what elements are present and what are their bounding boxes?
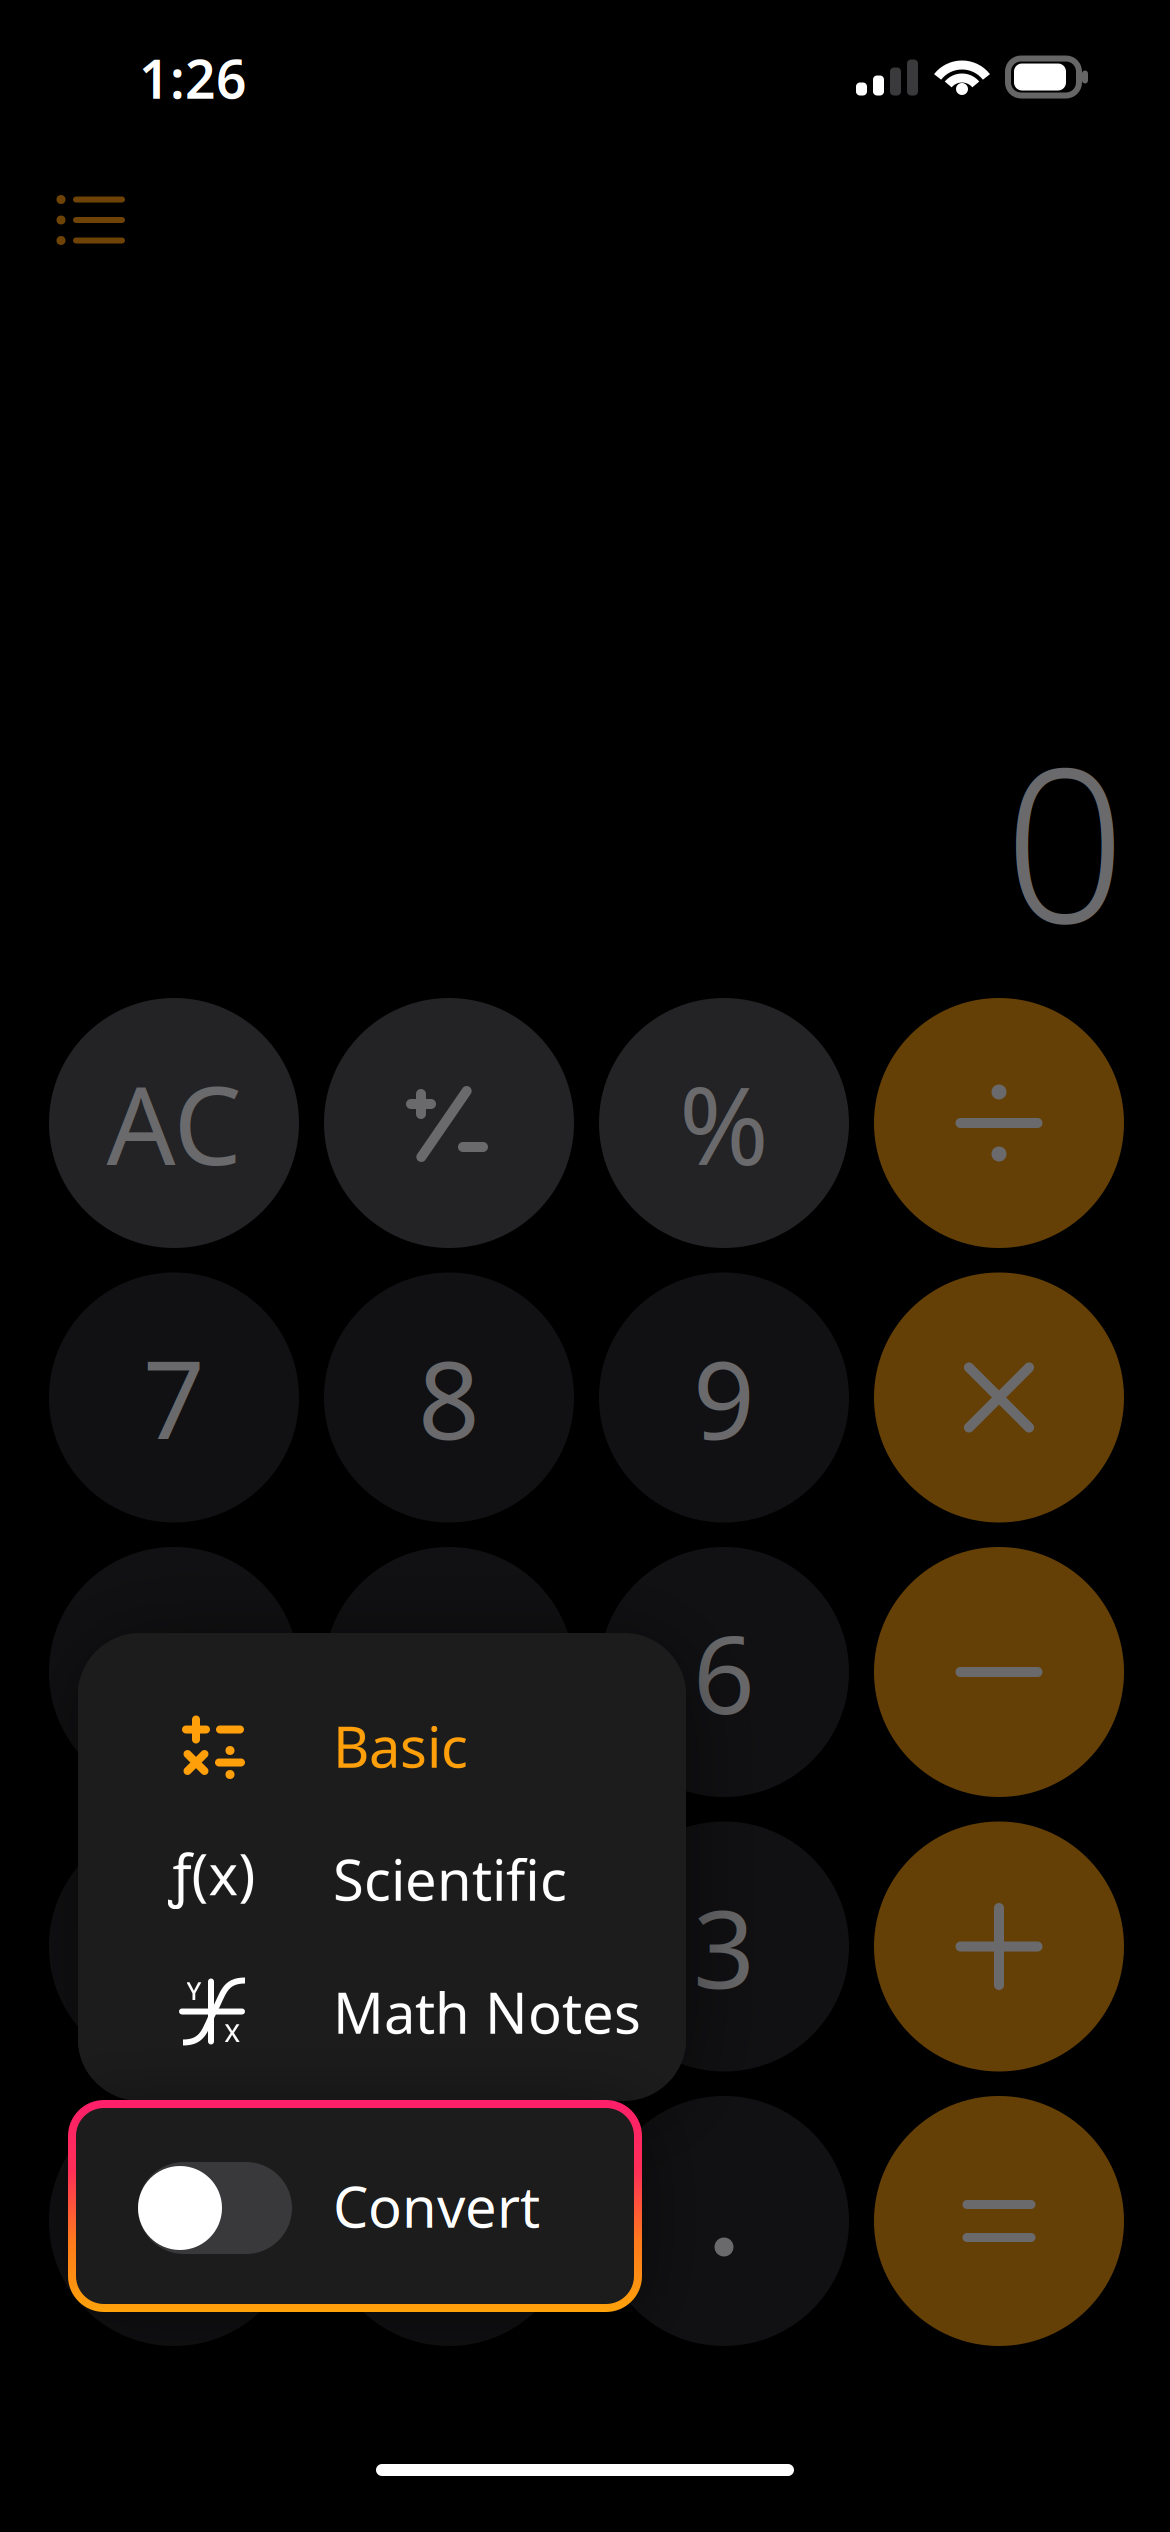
staticText: %	[679, 1051, 769, 1195]
staticText: AC	[106, 1051, 241, 1195]
staticText: 4	[143, 1600, 205, 1744]
staticText: 7	[143, 1326, 205, 1469]
button[interactable]	[874, 998, 1124, 1248]
staticText: ƒ(x)	[168, 1836, 255, 1911]
button[interactable]	[874, 1821, 1124, 2071]
button[interactable]: 6	[599, 1547, 849, 1797]
staticText: 1	[143, 1875, 205, 2018]
button[interactable]: 7	[49, 1272, 299, 1522]
button[interactable]	[874, 1547, 1124, 1797]
staticText: 0	[1004, 698, 1126, 982]
staticText: Convert	[333, 2169, 540, 2243]
button[interactable]	[599, 2096, 849, 2346]
staticText: Y	[186, 1974, 201, 2007]
button[interactable]: Basic	[78, 1679, 686, 1812]
button[interactable]	[324, 998, 574, 1248]
button[interactable]: ƒ(x)	[78, 1812, 686, 1945]
button[interactable]: History	[16, 155, 166, 285]
staticText: 8	[418, 1326, 480, 1469]
button[interactable]: 8	[324, 1272, 574, 1522]
staticText: X	[224, 2016, 239, 2049]
button[interactable]: 9	[599, 1272, 849, 1522]
button[interactable]: 5	[324, 1547, 574, 1797]
staticText: 6	[693, 1600, 755, 1744]
button[interactable]: 4	[49, 1547, 299, 1797]
staticText: Basic	[333, 1709, 468, 1783]
button[interactable]: Y	[78, 1945, 686, 2078]
button[interactable]: 1	[49, 1821, 299, 2071]
button[interactable]: AC	[49, 998, 299, 1248]
button[interactable]	[874, 2096, 1124, 2346]
button[interactable]: Convert	[68, 2100, 642, 2312]
staticText: Scientific	[333, 1842, 567, 1916]
button[interactable]: 2	[324, 1821, 574, 2071]
staticText: 5	[418, 1600, 480, 1744]
staticText: 3	[693, 1875, 755, 2018]
button[interactable]	[324, 2096, 574, 2346]
button[interactable]: 0	[49, 2096, 299, 2346]
staticText: 1:26	[139, 43, 247, 113]
staticText: 2	[418, 1875, 480, 2018]
button[interactable]: 3	[599, 1821, 849, 2071]
button[interactable]	[874, 1272, 1124, 1522]
staticText: Math Notes	[333, 1975, 641, 2049]
staticText: 9	[693, 1326, 755, 1469]
button[interactable]: %	[599, 998, 849, 1248]
staticText: 0	[143, 2149, 205, 2293]
